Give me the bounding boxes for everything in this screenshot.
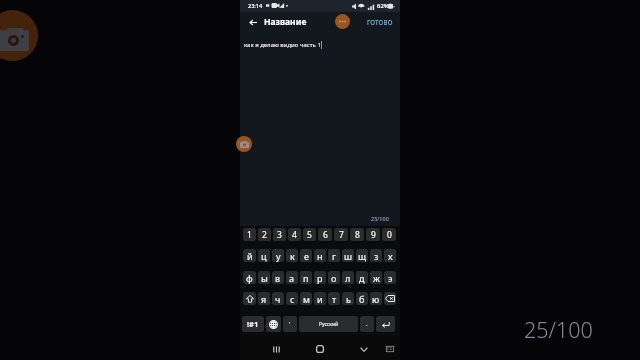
button[interactable]: ы	[258, 271, 270, 284]
staticText: б	[359, 293, 365, 305]
button[interactable]: ж	[370, 271, 382, 284]
button[interactable]: 4	[288, 228, 301, 241]
staticText: 25/100	[524, 315, 593, 344]
button[interactable]: н	[314, 249, 326, 262]
staticText: .	[366, 320, 368, 328]
button[interactable]: м	[300, 292, 312, 305]
button[interactable]: я	[258, 292, 270, 305]
button[interactable]: 7	[334, 228, 348, 241]
staticText: р	[317, 272, 323, 284]
staticText: й	[247, 250, 253, 262]
staticText: ю	[372, 293, 380, 305]
staticText: 1	[247, 229, 252, 241]
button[interactable]: 2	[258, 228, 271, 241]
staticText: о	[331, 272, 337, 284]
button[interactable]: д	[356, 271, 368, 284]
staticText: и	[317, 293, 323, 305]
staticText: н	[317, 250, 323, 262]
staticText: Название	[264, 16, 307, 28]
button[interactable]: ш	[342, 249, 354, 262]
staticText: д	[359, 272, 365, 284]
staticText: в	[275, 272, 281, 284]
staticText: е	[304, 250, 309, 262]
button[interactable]: Back	[246, 16, 259, 29]
button[interactable]: 9	[366, 228, 380, 241]
button[interactable]: 8	[350, 228, 364, 241]
staticText: п	[303, 272, 309, 284]
button[interactable]: Hide keyboard	[357, 342, 371, 356]
staticText: э	[388, 272, 393, 284]
button[interactable]: 1	[243, 228, 256, 241]
staticText: г	[332, 250, 336, 262]
button[interactable]: у	[272, 249, 284, 262]
button[interactable]: Change keyboard	[383, 342, 397, 356]
button[interactable]: More options	[335, 14, 350, 29]
button[interactable]: г	[328, 249, 340, 262]
staticText: а	[289, 272, 295, 284]
staticText: 62%	[377, 2, 389, 10]
staticText: ф	[246, 272, 253, 284]
staticText: 23:14	[248, 2, 263, 9]
button[interactable]: 0	[382, 228, 396, 241]
button[interactable]: в	[272, 271, 284, 284]
button[interactable]	[384, 292, 396, 305]
button[interactable]: 5	[303, 228, 316, 241]
staticText: 9	[371, 229, 376, 241]
button[interactable]: и	[314, 292, 326, 305]
button[interactable]: п	[300, 271, 312, 284]
button[interactable]: с	[286, 292, 298, 305]
button[interactable]: б	[356, 292, 368, 305]
button[interactable]	[243, 292, 256, 305]
staticText: ы	[261, 272, 268, 284]
button[interactable]: ь	[342, 292, 354, 305]
staticText: ц	[261, 250, 267, 262]
staticText: 8	[355, 229, 360, 241]
staticText: я	[261, 293, 267, 305]
staticText: 7	[339, 229, 344, 241]
staticText: 5	[307, 229, 312, 241]
staticText: ь	[346, 293, 351, 305]
staticText: 2	[262, 229, 267, 241]
button[interactable]	[376, 316, 395, 332]
button[interactable]: ф	[243, 271, 256, 284]
staticText: 4	[292, 229, 297, 241]
button[interactable]: ГОТОВО	[367, 18, 393, 26]
staticText: 3	[277, 229, 282, 241]
staticText: т	[332, 293, 337, 305]
staticText: как я делаю видио часть 1	[244, 41, 321, 49]
staticText: с	[290, 293, 295, 305]
button[interactable]: т	[328, 292, 340, 305]
staticText: Русский	[319, 321, 339, 328]
button[interactable]: р	[314, 271, 326, 284]
button[interactable]: 6	[318, 228, 332, 241]
button[interactable]: ч	[272, 292, 284, 305]
button[interactable]: а	[286, 271, 298, 284]
button[interactable]: Recent apps	[269, 342, 283, 356]
staticText: 25/100	[371, 215, 389, 222]
button[interactable]	[266, 316, 281, 332]
button[interactable]: з	[370, 249, 382, 262]
button[interactable]: Camera	[236, 136, 252, 152]
button[interactable]: й	[243, 249, 256, 262]
button[interactable]: Home	[313, 342, 327, 356]
button[interactable]: Русский	[299, 316, 358, 332]
button[interactable]: Camera	[0, 10, 38, 61]
button[interactable]: щ	[356, 249, 368, 262]
staticText: ш	[344, 250, 353, 262]
button[interactable]: к	[286, 249, 298, 262]
button[interactable]: '	[283, 316, 297, 332]
button[interactable]: !#1	[242, 316, 264, 332]
button[interactable]: ю	[370, 292, 382, 305]
button[interactable]: о	[328, 271, 340, 284]
button[interactable]: л	[342, 271, 354, 284]
button[interactable]: .	[360, 316, 374, 332]
staticText: 0	[387, 229, 392, 241]
button[interactable]: ц	[258, 249, 270, 262]
staticText: !#1	[247, 319, 259, 329]
button[interactable]: х	[384, 249, 396, 262]
staticText: м	[303, 293, 310, 305]
button[interactable]: е	[300, 249, 312, 262]
button[interactable]: 3	[273, 228, 286, 241]
staticText: л	[345, 272, 351, 284]
button[interactable]: э	[384, 271, 396, 284]
